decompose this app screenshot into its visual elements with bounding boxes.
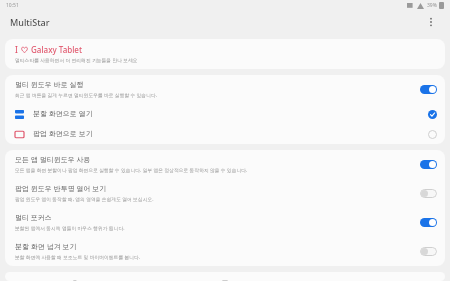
- staticText: 팝업 윈도우 반투명 열어 보기: [15, 184, 107, 194]
- button[interactable]: 분할 화면으로 열기: [5, 104, 445, 124]
- staticText: 멀티 포커스: [15, 213, 52, 223]
- button[interactable]: On: [420, 85, 437, 94]
- staticText: 분할된 앱에서 동시에 앱들이 마우스 행위가 됩니다.: [15, 225, 125, 232]
- staticText: 멀티스타를 사용하면서 더 편리해진 기능들을 만나 보세요: [15, 57, 138, 64]
- staticText: 39%: [427, 2, 437, 9]
- staticText: 팝업 화면으로 보기: [33, 129, 93, 139]
- staticText: 10:51: [6, 2, 19, 9]
- button[interactable]: 팝업 윈도우 반투명 열어 보기: [5, 179, 445, 208]
- staticText: I: [15, 44, 18, 55]
- staticText: 분할 화면으로 열기: [33, 109, 93, 119]
- button[interactable]: Off: [420, 247, 437, 256]
- button[interactable]: On: [420, 160, 437, 169]
- staticText: 팝업 윈도우 앱이 동작할 때, 앱의 영역을 손쉽게도 열어 보십시오.: [15, 196, 154, 203]
- button[interactable]: More options: [422, 13, 440, 31]
- button[interactable]: 멀티 윈도우 바로 실행: [5, 75, 445, 104]
- staticText: 모든 앱 멀티윈도우 사용: [15, 155, 91, 165]
- button[interactable]: 멀티 포커스: [5, 208, 445, 237]
- staticText: Galaxy Tablet: [31, 44, 82, 55]
- button[interactable]: I: [5, 39, 445, 69]
- button[interactable]: 분할 화면 넘겨 보기: [5, 237, 445, 266]
- button[interactable]: Off: [420, 189, 437, 198]
- staticText: 멀티 윈도우 바로 실행: [15, 80, 84, 90]
- staticText: 모든 앱을 화면 분할이나 팝업 화면으로 실행할 수 있습니다. 일부 앱은 …: [15, 167, 248, 174]
- staticText: 분할 화면에 사용할 때 보조노트 및 바이버이벤트를 봅니다.: [15, 254, 141, 261]
- button[interactable]: On: [420, 218, 437, 227]
- button[interactable]: 모든 앱 멀티윈도우 사용: [5, 150, 445, 179]
- staticText: MultiStar: [10, 16, 50, 28]
- staticText: 최근 앱 버튼을 길게 누르면 멀티윈도우를 바로 실행할 수 있습니다.: [15, 92, 158, 99]
- staticText: 분할 화면 넘겨 보기: [15, 242, 77, 252]
- button[interactable]: 팝업 화면으로 보기: [5, 124, 445, 144]
